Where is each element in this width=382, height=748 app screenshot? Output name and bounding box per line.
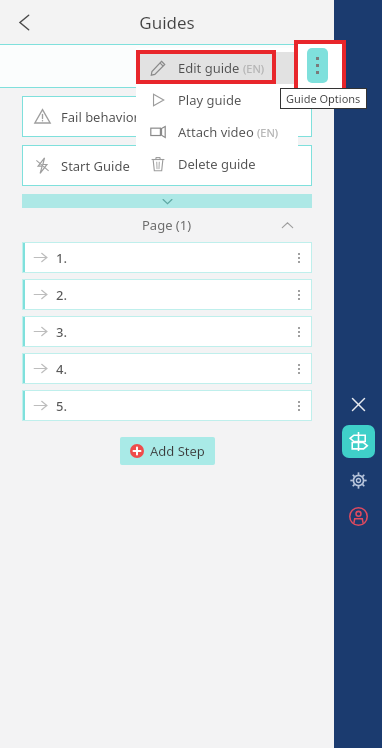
staticText: Fail behaviors: [61, 108, 146, 126]
staticText: 1.: [56, 249, 67, 267]
button[interactable]: 5.: [22, 390, 312, 421]
button[interactable]: 4.: [22, 353, 312, 384]
button[interactable]: Attach video: [136, 116, 298, 148]
button[interactable]: 2.: [22, 279, 312, 310]
button[interactable]: Start Guide: [22, 145, 312, 186]
button[interactable]: 1.: [22, 242, 312, 273]
staticText: Attach video: [178, 123, 254, 141]
button[interactable]: Page (1): [0, 208, 334, 242]
staticText: Add Step: [150, 442, 205, 460]
staticText: Guide Options: [286, 91, 361, 106]
staticText: 2.: [56, 286, 67, 304]
staticText: Delete guide: [178, 155, 256, 173]
button[interactable]: Profile: [344, 502, 372, 530]
button[interactable]: Edit guide: [136, 52, 298, 84]
button[interactable]: Step options: [286, 353, 312, 384]
staticText: Edit guide: [178, 59, 240, 77]
staticText: 5.: [56, 397, 67, 415]
staticText: Guides: [139, 11, 195, 34]
button[interactable]: Step options: [286, 279, 312, 310]
button[interactable]: 3.: [22, 316, 312, 347]
button[interactable]: Play guide: [136, 84, 298, 116]
button[interactable]: Delete guide: [136, 148, 298, 180]
staticText: Play guide: [178, 91, 242, 109]
button[interactable]: Step options: [286, 242, 312, 273]
button[interactable]: Add Step: [120, 437, 215, 465]
staticText: Start Guide: [61, 157, 130, 175]
button[interactable]: [22, 194, 312, 208]
staticText: 4.: [56, 360, 67, 378]
button[interactable]: Guides: [342, 425, 375, 458]
staticText: (EN): [243, 61, 265, 76]
staticText: Tutorial: [144, 57, 191, 75]
button[interactable]: Step options: [286, 316, 312, 347]
button[interactable]: Close: [343, 389, 373, 419]
staticText: (EN): [257, 125, 279, 140]
button[interactable]: Back: [6, 4, 42, 40]
button[interactable]: Fail behaviors: [22, 96, 312, 137]
button[interactable]: Settings: [344, 466, 372, 494]
button[interactable]: Guide Options: [307, 48, 328, 83]
button[interactable]: Step options: [286, 390, 312, 421]
staticText: 3.: [56, 323, 67, 341]
staticText: Page (1): [142, 216, 192, 234]
